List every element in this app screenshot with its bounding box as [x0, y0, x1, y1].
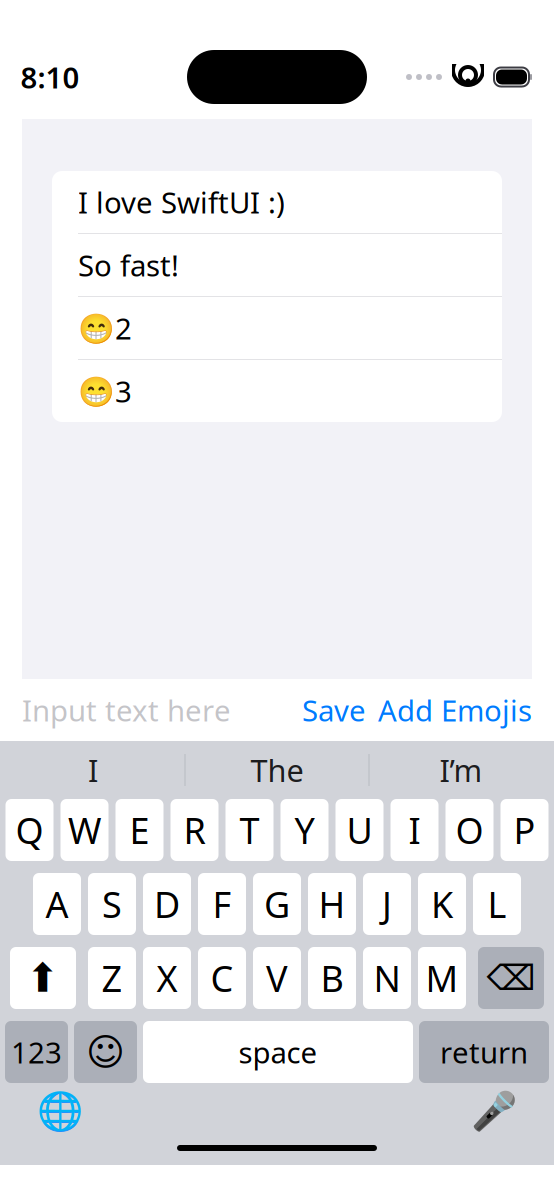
- button[interactable]: Save: [296, 682, 372, 737]
- button[interactable]: I’m: [369, 745, 552, 795]
- staticText: S: [102, 880, 122, 928]
- button[interactable]: T: [225, 799, 273, 861]
- staticText: M: [425, 954, 458, 1002]
- staticText: Input text here: [22, 690, 231, 729]
- staticText: J: [382, 880, 392, 928]
- staticText: ⬆: [26, 955, 60, 1001]
- button[interactable]: A: [33, 873, 81, 935]
- staticText: return: [440, 1032, 528, 1071]
- button[interactable]: H: [308, 873, 356, 935]
- button[interactable]: I: [1, 745, 184, 795]
- staticText: L: [487, 880, 506, 928]
- staticText: Y: [294, 806, 314, 854]
- button[interactable]: Add Emojis: [372, 682, 538, 737]
- staticText: T: [239, 806, 259, 854]
- button[interactable]: B: [308, 947, 356, 1009]
- staticText: So fast!: [78, 245, 179, 284]
- staticText: X: [156, 954, 177, 1002]
- button[interactable]: E: [115, 799, 163, 861]
- button[interactable]: I: [390, 799, 438, 861]
- staticText: G: [264, 880, 290, 928]
- staticText: C: [210, 954, 233, 1002]
- button[interactable]: J: [363, 873, 411, 935]
- staticText: space: [238, 1032, 317, 1071]
- button[interactable]: X: [143, 947, 191, 1009]
- button[interactable]: N: [363, 947, 411, 1009]
- staticText: P: [513, 806, 535, 854]
- staticText: Add Emojis: [378, 690, 532, 729]
- staticText: I’m: [439, 750, 482, 790]
- staticText: O: [455, 806, 483, 854]
- button[interactable]: Shift: [10, 947, 76, 1009]
- staticText: 8:10: [20, 57, 79, 96]
- button[interactable]: M: [418, 947, 466, 1009]
- button[interactable]: 123: [5, 1021, 68, 1083]
- staticText: I love SwiftUI :): [78, 182, 285, 221]
- button[interactable]: return: [419, 1021, 549, 1083]
- button[interactable]: Y: [280, 799, 328, 861]
- staticText: ⌫: [486, 958, 535, 998]
- button[interactable]: The: [185, 745, 368, 795]
- button[interactable]: 😁3: [52, 360, 502, 422]
- button[interactable]: P: [500, 799, 548, 861]
- staticText: 😁2: [78, 308, 132, 347]
- staticText: N: [373, 954, 400, 1002]
- button[interactable]: 😁2: [52, 297, 502, 359]
- staticText: D: [154, 880, 180, 928]
- button[interactable]: G: [253, 873, 301, 935]
- button[interactable]: space: [143, 1021, 413, 1083]
- staticText: B: [320, 954, 343, 1002]
- button[interactable]: Z: [88, 947, 136, 1009]
- button[interactable]: K: [418, 873, 466, 935]
- button[interactable]: Q: [5, 799, 53, 861]
- staticText: U: [346, 806, 372, 854]
- staticText: F: [212, 880, 231, 928]
- staticText: 123: [11, 1032, 62, 1071]
- button[interactable]: R: [170, 799, 218, 861]
- staticText: The: [250, 750, 303, 790]
- staticText: R: [183, 806, 205, 854]
- button[interactable]: U: [335, 799, 383, 861]
- staticText: Q: [15, 806, 43, 854]
- button[interactable]: S: [88, 873, 136, 935]
- staticText: ☺: [86, 1031, 125, 1073]
- button[interactable]: D: [143, 873, 191, 935]
- button[interactable]: So fast!: [52, 234, 502, 296]
- button[interactable]: Delete: [478, 947, 544, 1009]
- button[interactable]: W: [60, 799, 108, 861]
- button[interactable]: L: [473, 873, 521, 935]
- button[interactable]: Dictation: [466, 1086, 522, 1136]
- staticText: E: [129, 806, 149, 854]
- staticText: I: [408, 806, 420, 854]
- staticText: W: [68, 806, 101, 854]
- button[interactable]: C: [198, 947, 246, 1009]
- staticText: K: [431, 880, 453, 928]
- staticText: Z: [101, 954, 122, 1002]
- staticText: I: [88, 750, 98, 790]
- button[interactable]: Emoji: [74, 1021, 137, 1083]
- button[interactable]: F: [198, 873, 246, 935]
- staticText: V: [266, 954, 288, 1002]
- button[interactable]: O: [445, 799, 493, 861]
- staticText: H: [318, 880, 345, 928]
- staticText: Save: [302, 690, 366, 729]
- button[interactable]: Next keyboard: [32, 1086, 88, 1136]
- staticText: 😁3: [78, 371, 132, 410]
- button[interactable]: I love SwiftUI :): [52, 171, 502, 233]
- staticText: 🎤: [471, 1090, 517, 1132]
- staticText: A: [45, 880, 68, 928]
- button[interactable]: V: [253, 947, 301, 1009]
- staticText: 🌐: [37, 1090, 83, 1132]
